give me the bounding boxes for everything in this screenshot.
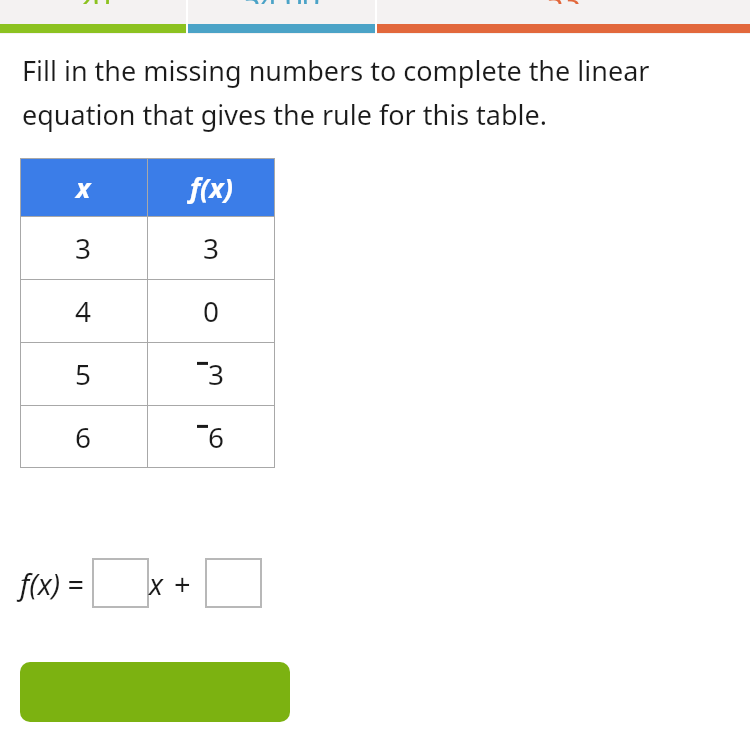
staticText: + bbox=[174, 564, 191, 603]
staticText: 4 bbox=[75, 292, 92, 330]
staticText: 0 bbox=[203, 292, 220, 330]
staticText: 6 bbox=[208, 418, 225, 456]
staticText: x bbox=[149, 564, 164, 603]
button[interactable]: 54.00 bbox=[188, 0, 375, 34]
staticText: 20 bbox=[76, 0, 111, 4]
staticText: 3 bbox=[203, 229, 220, 267]
staticText: x bbox=[76, 169, 91, 206]
button[interactable]: Submit answer bbox=[20, 662, 290, 722]
staticText: 53 bbox=[546, 0, 581, 4]
button[interactable]: 20 bbox=[0, 0, 186, 34]
staticText: 3 bbox=[208, 355, 225, 393]
button[interactable]: 53 bbox=[377, 0, 750, 34]
staticText: f(x) = bbox=[20, 564, 92, 603]
staticText: Fill in the missing numbers to complete … bbox=[22, 52, 724, 132]
staticText: 5 bbox=[75, 355, 92, 393]
staticText: f(x) bbox=[190, 169, 233, 206]
button[interactable]: Answer input field bbox=[205, 558, 262, 608]
staticText: 6 bbox=[75, 418, 92, 456]
button[interactable]: Answer input field bbox=[92, 558, 149, 608]
staticText: 3 bbox=[75, 229, 92, 267]
staticText: 54.00 bbox=[243, 0, 320, 4]
